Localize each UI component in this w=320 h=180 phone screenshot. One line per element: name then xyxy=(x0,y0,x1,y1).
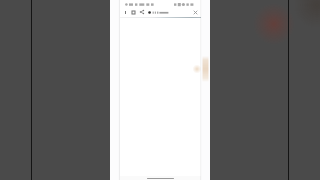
button[interactable]: Page address xyxy=(148,9,174,15)
button[interactable]: Tabs xyxy=(130,9,136,15)
button[interactable]: Share xyxy=(139,9,145,15)
button[interactable]: More options xyxy=(122,9,128,15)
button[interactable]: Close xyxy=(192,9,199,16)
